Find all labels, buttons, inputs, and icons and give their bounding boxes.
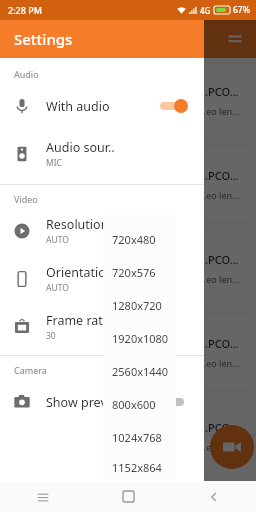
staticText: With audio [46, 98, 110, 115]
staticText: ...eo len... [199, 441, 240, 453]
staticText: Camera [14, 364, 47, 376]
button[interactable]: Recents [0, 481, 86, 512]
staticText: ...PCO... [199, 252, 239, 267]
button[interactable]: 1024x768 [103, 421, 176, 454]
button[interactable]: Resolution [0, 207, 204, 255]
staticText: ...PCO... [199, 168, 239, 183]
staticText: AUTO [46, 234, 69, 246]
staticText: 1152x864 [112, 460, 162, 475]
button[interactable]: Back [171, 481, 256, 512]
staticText: Orientation [46, 264, 114, 281]
button[interactable]: With audio [0, 82, 204, 130]
button[interactable]: Record video [210, 425, 254, 469]
button[interactable]: 800x600 [103, 388, 176, 421]
staticText: 4G [200, 5, 211, 16]
button[interactable]: Frame rate [0, 303, 204, 351]
staticText: 800x600 [112, 397, 156, 412]
staticText: Audio sour.. [46, 139, 115, 156]
staticText: Audio [14, 68, 39, 80]
staticText: AUTO [46, 282, 69, 294]
button[interactable]: List view [226, 30, 244, 48]
staticText: ...PCO... [199, 336, 239, 351]
button[interactable]: 1920x1080 [103, 322, 176, 355]
staticText: Show preview [46, 394, 127, 411]
button[interactable]: 720x576 [103, 256, 176, 289]
button[interactable]: Orientation [0, 255, 204, 303]
staticText: Resolution [46, 216, 109, 233]
staticText: ...eo len... [199, 357, 240, 369]
button[interactable]: ...PCO... [6, 64, 250, 136]
button[interactable]: 720x480 [103, 223, 176, 256]
button[interactable]: 2560x1440 [103, 355, 176, 388]
staticText: 2560x1440 [112, 364, 169, 379]
staticText: Settings [14, 29, 73, 49]
staticText: 30 [46, 330, 56, 342]
button[interactable]: Home [86, 481, 171, 512]
staticText: 1920x1080 [112, 331, 169, 346]
button[interactable]: ...PCO... [6, 148, 250, 220]
button[interactable]: ...PCO... [6, 232, 250, 304]
staticText: 2:28 PM [8, 4, 42, 16]
staticText: Frame rate [46, 312, 110, 329]
staticText: 720x480 [112, 232, 156, 247]
staticText: ...PCO... [199, 84, 239, 99]
button[interactable]: Show preview [0, 378, 204, 426]
button[interactable]: ...PCO... [6, 400, 250, 472]
button[interactable]: Audio sour.. [0, 130, 204, 178]
staticText: ...eo len... [199, 189, 240, 201]
button[interactable]: 1280x720 [103, 289, 176, 322]
button[interactable]: 1152x864 [103, 454, 176, 480]
staticText: MIC [46, 157, 62, 169]
staticText: 67% [233, 4, 250, 16]
staticText: ...PCO... [199, 420, 239, 435]
staticText: Video [14, 193, 38, 205]
staticText: 720x576 [112, 265, 156, 280]
staticText: 1024x768 [112, 430, 162, 445]
staticText: ...eo len... [199, 273, 240, 285]
staticText: 1280x720 [112, 298, 162, 313]
button[interactable]: ...PCO... [6, 316, 250, 388]
staticText: ...eo len... [199, 105, 240, 117]
